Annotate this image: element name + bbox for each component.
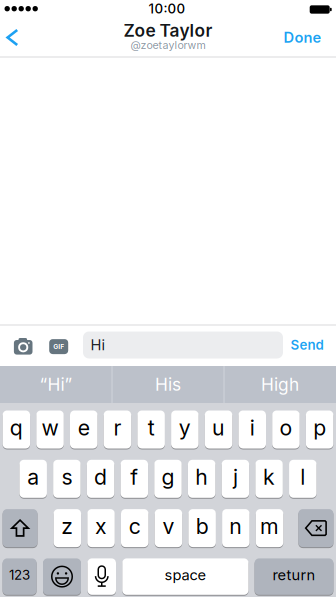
button[interactable]: High	[225, 366, 335, 403]
button[interactable]: Back	[6, 28, 18, 46]
button[interactable]: o	[272, 410, 300, 448]
staticText: u	[212, 415, 225, 440]
staticText: Hi	[90, 336, 105, 354]
button[interactable]: w	[36, 410, 64, 448]
staticText: l	[300, 464, 305, 490]
button[interactable]: e	[70, 410, 97, 448]
staticText: m	[260, 514, 279, 539]
staticText: f	[130, 464, 138, 490]
button[interactable]: Numbers	[3, 558, 37, 595]
staticText: q	[10, 415, 23, 440]
staticText: Zoe Taylor	[123, 20, 212, 41]
staticText: h	[195, 464, 208, 490]
button[interactable]: l	[289, 460, 317, 498]
button[interactable]: Attach photo	[12, 337, 34, 356]
staticText: w	[42, 415, 59, 440]
button[interactable]: a	[19, 460, 47, 498]
button[interactable]: space	[122, 558, 248, 595]
button[interactable]: Done	[283, 29, 321, 46]
button[interactable]: h	[188, 460, 215, 498]
button[interactable]: n	[222, 509, 250, 547]
staticText: n	[229, 514, 242, 539]
staticText: a	[27, 464, 39, 490]
staticText: o	[279, 415, 292, 440]
staticText: c	[129, 514, 141, 539]
button[interactable]: Shift	[3, 509, 37, 547]
button[interactable]: Send	[290, 337, 323, 353]
button[interactable]: m	[256, 509, 283, 547]
staticText: i	[250, 415, 255, 440]
button[interactable]: c	[121, 509, 148, 547]
button[interactable]: b	[188, 509, 216, 547]
staticText: d	[94, 464, 107, 490]
button[interactable]: k	[255, 460, 283, 498]
button[interactable]: Message field	[83, 331, 283, 358]
button[interactable]: t	[137, 410, 165, 448]
staticText: e	[78, 415, 90, 440]
button[interactable]: j	[222, 460, 249, 498]
staticText: “Hi”	[39, 374, 72, 395]
button[interactable]: x	[87, 509, 115, 547]
button[interactable]: q	[3, 410, 30, 448]
staticText: x	[95, 514, 107, 539]
button[interactable]: i	[238, 410, 266, 448]
button[interactable]: z	[54, 509, 81, 547]
button[interactable]: Dictate	[87, 558, 116, 595]
staticText: space	[164, 566, 206, 583]
button[interactable]: p	[306, 410, 333, 448]
button[interactable]: Delete	[298, 509, 333, 547]
button[interactable]: Attach GIF	[49, 339, 69, 355]
staticText: p	[313, 415, 326, 440]
button[interactable]: “Hi”	[1, 366, 111, 403]
staticText: GIF	[53, 343, 64, 351]
staticText: y	[179, 415, 191, 440]
button[interactable]: v	[155, 509, 182, 547]
staticText: Done	[283, 29, 321, 46]
button[interactable]: r	[104, 410, 131, 448]
staticText: @zoetaylorwm	[130, 39, 205, 51]
button[interactable]: u	[205, 410, 232, 448]
staticText: return	[272, 566, 315, 583]
staticText: Send	[290, 337, 323, 353]
staticText: j	[233, 464, 238, 490]
button[interactable]: Emoji	[43, 558, 81, 595]
button[interactable]: s	[53, 460, 81, 498]
staticText: v	[162, 514, 174, 539]
staticText: 123	[9, 567, 30, 583]
staticText: z	[61, 514, 73, 539]
button[interactable]: His	[113, 366, 223, 403]
staticText: His	[155, 374, 181, 395]
staticText: 10:00	[148, 1, 185, 16]
button[interactable]: d	[87, 460, 114, 498]
button[interactable]: y	[171, 410, 199, 448]
staticText: g	[161, 464, 174, 490]
button[interactable]: return	[255, 558, 333, 595]
staticText: r	[113, 415, 121, 440]
staticText: t	[148, 415, 155, 440]
staticText: s	[61, 464, 72, 490]
button[interactable]: g	[154, 460, 182, 498]
staticText: b	[196, 514, 209, 539]
staticText: High	[261, 374, 299, 395]
staticText: k	[263, 464, 275, 490]
button[interactable]: f	[121, 460, 148, 498]
